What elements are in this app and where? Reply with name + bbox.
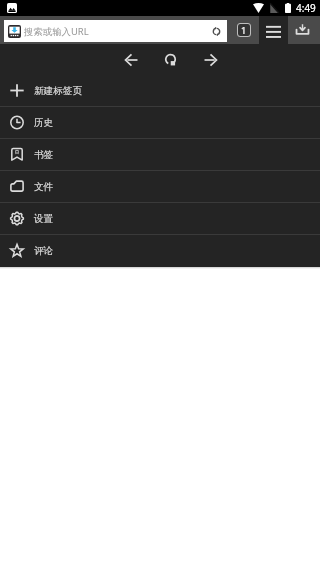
button[interactable]: 评论 — [0, 235, 320, 267]
staticText: 新建标签页 — [34, 85, 82, 97]
button[interactable]: Back — [116, 44, 146, 75]
staticText: 设置 — [34, 213, 54, 225]
staticText: 评论 — [34, 245, 54, 257]
button[interactable]: 历史 — [0, 107, 320, 138]
staticText: 书签 — [34, 149, 54, 161]
button[interactable]: Tabs — [233, 16, 255, 44]
staticText: 文件 — [34, 181, 54, 193]
staticText: 1 — [241, 24, 247, 36]
button[interactable]: Forward — [195, 44, 226, 75]
button[interactable]: 搜索或输入URL — [4, 20, 227, 42]
button[interactable]: 设置 — [0, 203, 320, 234]
staticText: 搜索或输入URL — [24, 25, 89, 38]
button[interactable]: Menu — [259, 16, 288, 44]
staticText: 4:49 — [296, 1, 316, 15]
button[interactable]: 新建标签页 — [0, 75, 320, 106]
button[interactable]: Downloads — [288, 16, 317, 44]
staticText: 历史 — [34, 117, 54, 129]
button[interactable]: 文件 — [0, 171, 320, 202]
button[interactable]: 书签 — [0, 139, 320, 170]
button[interactable]: Reload — [155, 44, 186, 75]
button[interactable]: Refresh page — [205, 20, 227, 42]
